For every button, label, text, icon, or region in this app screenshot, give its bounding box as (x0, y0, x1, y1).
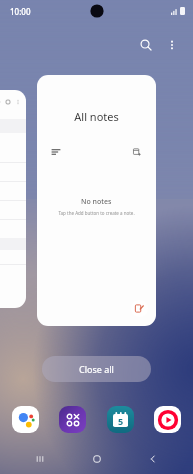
button[interactable]: Back (137, 444, 169, 474)
button[interactable]: Add folder (129, 144, 145, 160)
button[interactable]: All notes (37, 75, 156, 326)
staticText: 5 (118, 415, 124, 427)
button[interactable]: Games (59, 406, 86, 433)
button[interactable]: YouTube Music (154, 406, 181, 433)
button[interactable]: oice (0, 90, 26, 308)
button[interactable]: Close all (42, 356, 151, 382)
button[interactable]: Search (133, 32, 159, 58)
button[interactable]: More options (159, 32, 185, 58)
button[interactable]: Sort (48, 144, 64, 160)
button[interactable]: Home (81, 444, 113, 474)
staticText: Tap the Add button to create a note. (58, 210, 135, 216)
staticText: No notes (81, 197, 112, 207)
staticText: All notes (37, 109, 156, 124)
button[interactable]: Assistant (12, 406, 39, 433)
staticText: 10:00 (10, 6, 31, 17)
button[interactable]: Recents (24, 444, 56, 474)
button[interactable]: Create note (131, 300, 148, 317)
staticText: Close all (79, 363, 114, 375)
button[interactable]: Calendar (107, 406, 134, 433)
